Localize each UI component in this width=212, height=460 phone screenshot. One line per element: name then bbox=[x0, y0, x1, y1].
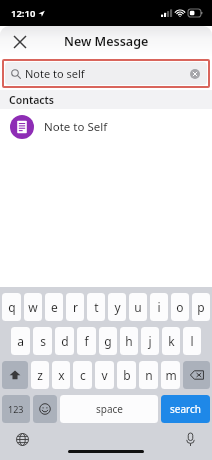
button[interactable]: p bbox=[192, 293, 210, 321]
button[interactable]: Note to Self bbox=[0, 109, 212, 145]
staticText: i bbox=[157, 299, 161, 315]
staticText: s bbox=[40, 333, 46, 349]
staticText: space bbox=[96, 402, 123, 416]
button[interactable]: u bbox=[129, 293, 147, 321]
staticText: k bbox=[168, 333, 175, 349]
button[interactable]: z bbox=[31, 361, 49, 389]
staticText: o bbox=[176, 299, 184, 315]
staticText: Contacts bbox=[9, 93, 54, 107]
button[interactable]: b bbox=[117, 361, 136, 389]
staticText: u bbox=[134, 299, 142, 315]
staticText: q bbox=[8, 299, 16, 315]
staticText: h bbox=[125, 333, 133, 349]
staticText: j bbox=[148, 333, 152, 349]
staticText: New Message bbox=[64, 33, 149, 50]
button[interactable]: w bbox=[24, 293, 42, 321]
staticText: a bbox=[17, 333, 24, 349]
button[interactable]: f bbox=[77, 327, 96, 355]
staticText: m bbox=[165, 367, 177, 383]
staticText: y bbox=[114, 299, 121, 315]
button[interactable]: q bbox=[2, 293, 21, 321]
button[interactable]: Clear search bbox=[187, 66, 203, 82]
button[interactable]: h bbox=[120, 327, 138, 355]
button[interactable]: t bbox=[87, 293, 105, 321]
button[interactable]: s bbox=[33, 327, 52, 355]
button[interactable]: m bbox=[161, 361, 180, 389]
button[interactable]: space bbox=[60, 395, 158, 423]
staticText: 12:10 bbox=[11, 7, 36, 20]
button[interactable]: y bbox=[108, 293, 126, 321]
button[interactable]: Note to self bbox=[5, 62, 207, 85]
button[interactable]: k bbox=[162, 327, 180, 355]
button[interactable]: v bbox=[95, 361, 114, 389]
button[interactable]: Change keyboard bbox=[12, 429, 32, 449]
button[interactable]: c bbox=[73, 361, 92, 389]
button[interactable]: l bbox=[183, 327, 201, 355]
staticText: f bbox=[84, 333, 89, 349]
button[interactable]: j bbox=[141, 327, 159, 355]
staticText: v bbox=[101, 367, 108, 383]
button[interactable]: Dictate bbox=[180, 429, 200, 449]
staticText: c bbox=[80, 367, 86, 383]
staticText: e bbox=[51, 299, 58, 315]
staticText: Note to self bbox=[25, 66, 85, 81]
button[interactable]: Emoji bbox=[33, 395, 57, 423]
staticText: search bbox=[170, 402, 201, 416]
staticText: g bbox=[104, 333, 112, 349]
staticText: t bbox=[94, 299, 99, 315]
staticText: b bbox=[123, 367, 131, 383]
button[interactable]: a bbox=[11, 327, 30, 355]
staticText: Note to Self bbox=[44, 119, 108, 135]
staticText: n bbox=[145, 367, 153, 383]
button[interactable]: n bbox=[139, 361, 158, 389]
staticText: z bbox=[37, 367, 43, 383]
staticText: x bbox=[58, 367, 65, 383]
staticText: 123 bbox=[8, 403, 24, 415]
staticText: d bbox=[61, 333, 69, 349]
button[interactable]: o bbox=[171, 293, 189, 321]
button[interactable]: Backspace bbox=[183, 361, 210, 389]
button[interactable]: Shift bbox=[2, 361, 28, 389]
staticText: l bbox=[190, 333, 194, 349]
button[interactable]: i bbox=[150, 293, 168, 321]
button[interactable]: search bbox=[161, 395, 210, 423]
button[interactable]: 123 bbox=[2, 395, 30, 423]
staticText: w bbox=[28, 299, 38, 315]
button[interactable]: x bbox=[52, 361, 70, 389]
button[interactable]: g bbox=[99, 327, 117, 355]
button[interactable]: e bbox=[45, 293, 63, 321]
staticText: p bbox=[197, 299, 205, 315]
button[interactable]: d bbox=[55, 327, 74, 355]
button[interactable]: r bbox=[66, 293, 84, 321]
button[interactable]: Close bbox=[8, 30, 32, 54]
staticText: r bbox=[73, 299, 78, 315]
